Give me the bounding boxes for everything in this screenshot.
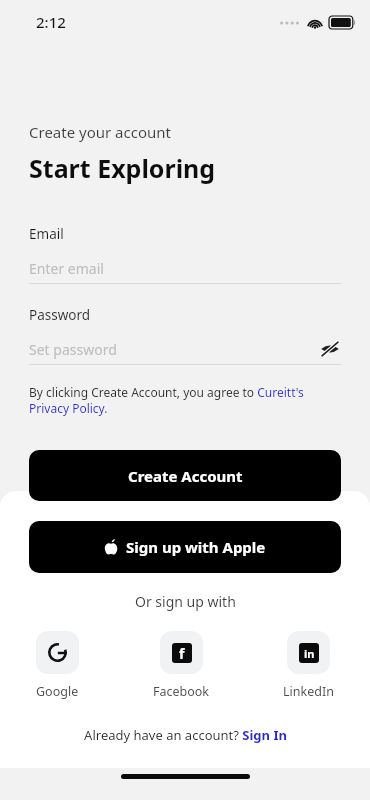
button[interactable]: Sign up with LinkedIn: [283, 631, 334, 700]
staticText: Set password: [29, 340, 117, 359]
staticText: Email: [29, 225, 64, 243]
staticText: Start Exploring: [29, 151, 216, 185]
staticText: Facebook: [153, 683, 210, 700]
staticText: Sign up with Apple: [126, 537, 266, 557]
staticText: f: [179, 644, 185, 663]
button[interactable]: Show password: [319, 338, 341, 360]
staticText: Enter email: [29, 259, 104, 278]
staticText: Create your account: [29, 122, 171, 142]
staticText: 2:12: [36, 12, 66, 32]
button[interactable]: Already have an account? Sign In: [84, 726, 287, 744]
staticText: Google: [36, 683, 79, 700]
staticText: Already have an account? Sign In: [84, 726, 287, 744]
button[interactable]: Sign up with Google: [36, 631, 79, 700]
button[interactable]: Sign up with Apple: [29, 521, 341, 573]
button[interactable]: Create Account: [29, 450, 341, 501]
button[interactable]: Sign up with Facebook: [153, 631, 210, 700]
button[interactable]: Enter email: [29, 257, 341, 279]
button[interactable]: Set password: [29, 338, 319, 360]
staticText: Or sign up with: [135, 592, 236, 611]
staticText: Password: [29, 306, 91, 324]
button[interactable]: By clicking Create Account, you agree to…: [29, 384, 341, 417]
staticText: in: [304, 646, 315, 661]
staticText: Create Account: [128, 466, 243, 486]
staticText: LinkedIn: [283, 683, 334, 700]
